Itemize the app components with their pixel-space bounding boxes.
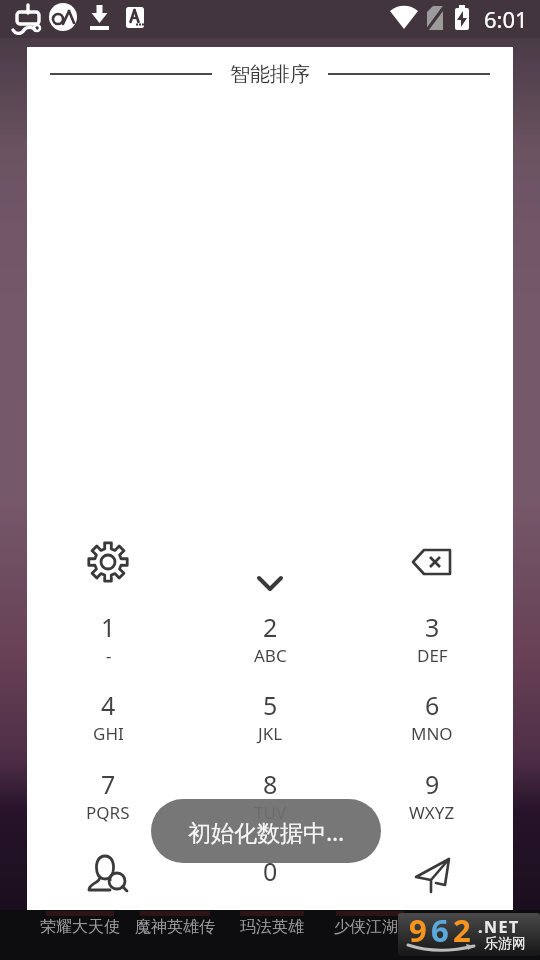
staticText: 6 bbox=[431, 909, 449, 951]
button[interactable]: 7 bbox=[27, 756, 189, 834]
staticText: 0 bbox=[263, 854, 278, 888]
button[interactable]: 9 bbox=[351, 756, 513, 834]
button[interactable] bbox=[392, 522, 472, 602]
staticText: 8 bbox=[263, 767, 278, 801]
staticText: PQRS bbox=[86, 801, 130, 824]
staticText: GHI bbox=[93, 722, 124, 745]
staticText: 9 bbox=[425, 767, 440, 801]
staticText: 3 bbox=[425, 610, 440, 644]
staticText: 9 bbox=[409, 909, 427, 951]
staticText: .NET bbox=[478, 916, 520, 938]
button[interactable] bbox=[392, 835, 472, 911]
button[interactable]: 少侠江湖志 bbox=[334, 916, 414, 938]
staticText: 少侠江湖志 bbox=[334, 917, 414, 937]
button[interactable]: 荣耀大天使 bbox=[40, 916, 120, 938]
button[interactable]: 5 bbox=[189, 677, 351, 755]
staticText: 6:01 bbox=[484, 4, 528, 34]
button[interactable]: 魔神英雄传 bbox=[135, 916, 215, 938]
staticText: 乐游网 bbox=[484, 935, 526, 953]
staticText: ABC bbox=[254, 644, 287, 667]
button[interactable]: 2 bbox=[189, 599, 351, 677]
staticText: 智能排序 bbox=[230, 62, 310, 87]
button[interactable] bbox=[68, 835, 148, 911]
staticText: - bbox=[106, 644, 112, 667]
staticText: MNO bbox=[411, 722, 453, 745]
staticText: WXYZ bbox=[409, 801, 455, 824]
staticText: TUV bbox=[254, 801, 287, 824]
button[interactable]: 玛法英雄 bbox=[238, 916, 306, 938]
staticText: 7 bbox=[101, 767, 116, 801]
staticText: 2 bbox=[263, 610, 278, 644]
staticText: 1 bbox=[101, 610, 116, 644]
button[interactable] bbox=[230, 543, 310, 623]
staticText: 魔神英雄传 bbox=[135, 917, 215, 937]
staticText: 荣耀大天使 bbox=[40, 917, 120, 937]
staticText: 4 bbox=[101, 688, 116, 722]
staticText: 2 bbox=[453, 909, 471, 951]
button[interactable] bbox=[68, 522, 148, 602]
button[interactable]: 9 bbox=[398, 913, 540, 956]
staticText: JKL bbox=[258, 722, 283, 745]
button[interactable]: 4 bbox=[27, 677, 189, 755]
staticText: 5 bbox=[263, 688, 278, 722]
staticText: DEF bbox=[417, 644, 448, 667]
staticText: 初始化数据中… bbox=[188, 816, 345, 847]
button[interactable]: 8 bbox=[189, 756, 351, 834]
staticText: 6 bbox=[425, 688, 440, 722]
button[interactable]: 3 bbox=[351, 599, 513, 677]
button[interactable]: 6 bbox=[351, 677, 513, 755]
button[interactable]: 0 bbox=[230, 833, 310, 909]
button[interactable]: 1 bbox=[27, 599, 189, 677]
staticText: 玛法英雄 bbox=[240, 917, 304, 937]
